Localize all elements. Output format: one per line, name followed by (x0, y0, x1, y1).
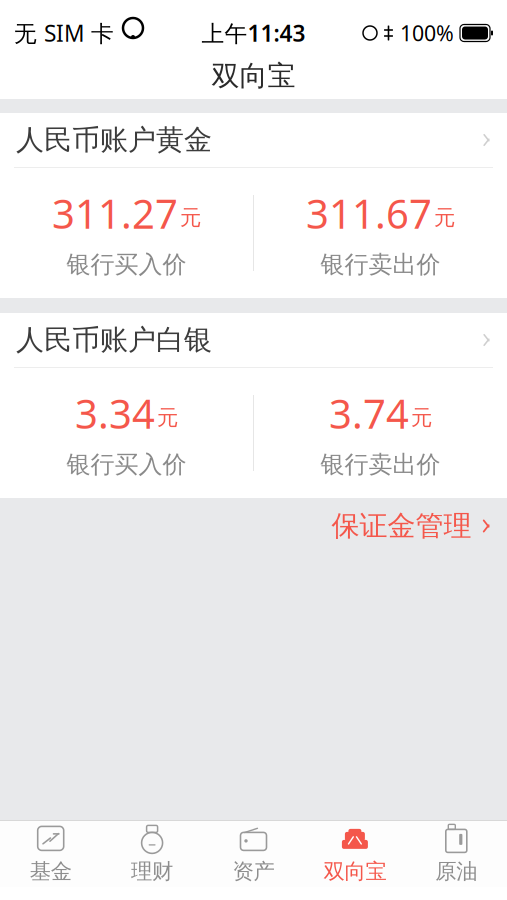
staticText: 311.27 (52, 187, 178, 240)
staticText: 银行卖出价 (320, 450, 440, 479)
staticText: 人民币账户黄金 (16, 123, 212, 157)
staticText: 保证金管理 (331, 509, 471, 543)
staticText: 311.67 (306, 187, 432, 240)
staticText: 银行卖出价 (320, 250, 440, 279)
button[interactable]: 原油 (406, 821, 507, 887)
button[interactable]: 保证金管理 (0, 498, 507, 554)
button[interactable]: 资产 (203, 821, 304, 887)
button[interactable]: 人民币账户黄金 (0, 113, 507, 298)
staticText: 3.34 (75, 387, 155, 440)
staticText: 元 (157, 405, 178, 431)
staticText: 上午11:43 (201, 18, 305, 48)
button[interactable]: 双向宝 (304, 821, 406, 887)
staticText: 银行买入价 (66, 250, 186, 279)
button[interactable]: 理财 (101, 821, 203, 887)
staticText: 元 (411, 405, 432, 431)
staticText: 基金 (30, 858, 72, 885)
staticText: 理财 (131, 858, 173, 885)
staticText: 元 (434, 205, 455, 231)
staticText: 银行买入价 (66, 450, 186, 479)
staticText: 元 (180, 205, 201, 231)
staticText: 100% (400, 19, 454, 47)
staticText: 双向宝 (211, 59, 295, 93)
staticText: 3.74 (329, 387, 409, 440)
staticText: 原油 (435, 858, 477, 885)
staticText: 双向宝 (323, 858, 386, 885)
button[interactable]: 基金 (0, 821, 101, 887)
staticText: 资产 (232, 858, 274, 885)
staticText: 无 SIM 卡 (14, 18, 114, 48)
staticText: 人民币账户白银 (16, 323, 212, 357)
button[interactable]: 人民币账户白银 (0, 313, 507, 498)
